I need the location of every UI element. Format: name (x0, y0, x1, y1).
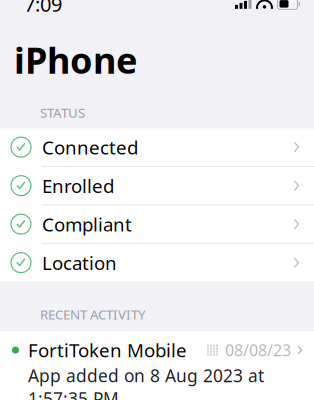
staticText: iPhone (14, 36, 137, 84)
staticText: RECENT ACTIVITY (40, 305, 146, 323)
button[interactable]: Enrolled (0, 167, 314, 205)
staticText: Enrolled (42, 173, 114, 198)
button[interactable]: Compliant (0, 205, 314, 244)
button[interactable]: Connected (0, 128, 314, 167)
button[interactable]: FortiToken Mobile (0, 331, 314, 400)
staticText: Location (42, 250, 117, 275)
staticText: FortiToken Mobile (28, 338, 187, 362)
staticText: App added on 8 Aug 2023 at 1:57:35 PM (28, 364, 264, 400)
staticText: 7:09 (24, 0, 62, 17)
staticText: Compliant (42, 212, 132, 236)
staticText: STATUS (40, 104, 85, 121)
staticText: 08/08/23 (225, 339, 291, 361)
staticText: Connected (42, 135, 138, 159)
button[interactable]: Location (0, 244, 314, 281)
